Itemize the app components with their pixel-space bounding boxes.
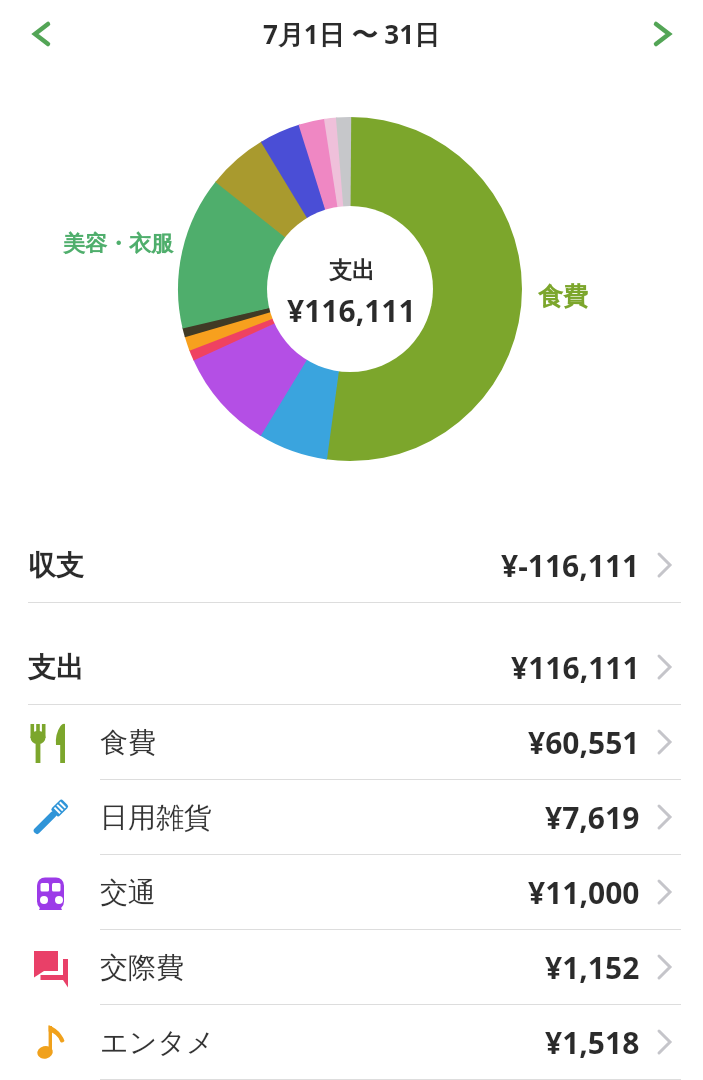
staticText: エンタメ — [100, 1025, 215, 1060]
staticText: 7月1日 〜 31日 — [263, 16, 441, 52]
staticText: ¥11,000 — [528, 872, 640, 913]
staticText: ¥60,551 — [528, 722, 640, 763]
button[interactable]: 交通 — [0, 855, 703, 929]
staticText: ¥-116,111 — [501, 545, 640, 586]
staticText: 日用雑貨 — [100, 800, 212, 835]
button[interactable]: 交際費 — [0, 930, 703, 1004]
staticText: 美容・衣服 — [63, 230, 173, 258]
staticText: ¥116,111 — [511, 647, 640, 688]
staticText: ¥7,619 — [545, 797, 640, 838]
staticText: 食費 — [538, 281, 588, 312]
staticText: ¥1,518 — [545, 1022, 640, 1063]
staticText: 交際費 — [100, 950, 184, 985]
button[interactable] — [645, 16, 681, 52]
button[interactable]: 支出 — [0, 630, 703, 704]
staticText: 食費 — [100, 725, 156, 760]
staticText: ¥1,152 — [545, 947, 640, 988]
staticText: 収支 — [28, 548, 84, 583]
staticText: 支出 — [28, 650, 84, 685]
button[interactable] — [22, 16, 58, 52]
staticText: 支出 — [329, 256, 375, 285]
button[interactable]: 収支 — [0, 528, 703, 602]
button[interactable]: エンタメ — [0, 1005, 703, 1079]
button[interactable]: 食費 — [0, 705, 703, 779]
staticText: 交通 — [100, 875, 156, 910]
button[interactable]: 日用雑貨 — [0, 780, 703, 854]
staticText: ¥116,111 — [287, 290, 416, 331]
